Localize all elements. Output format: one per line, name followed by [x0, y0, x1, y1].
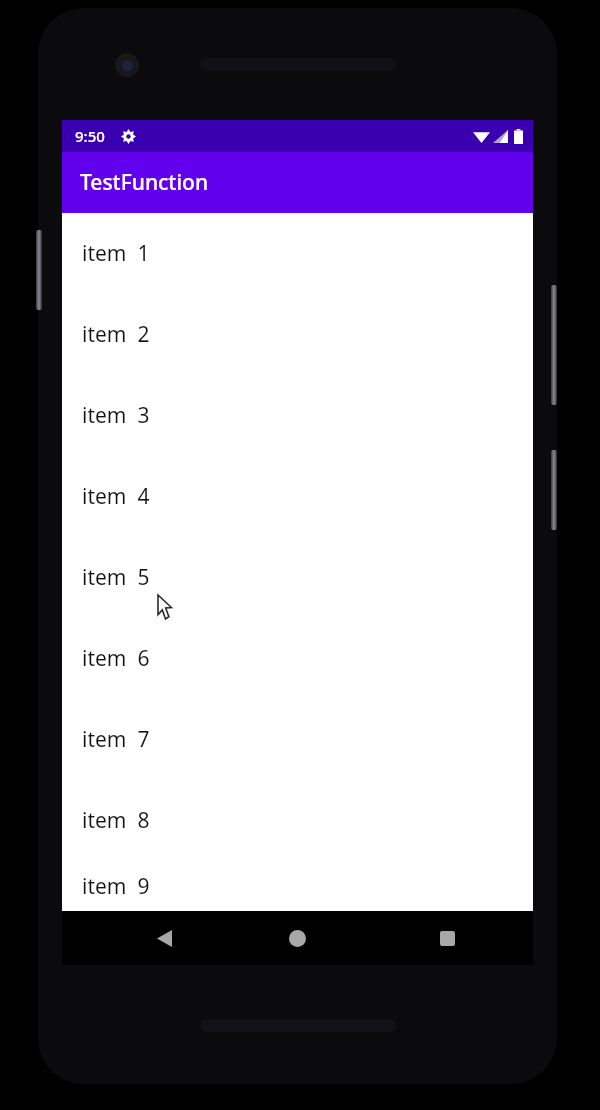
- staticText: item 2: [82, 320, 150, 349]
- staticText: item 5: [82, 563, 150, 592]
- staticText: TestFunction: [80, 168, 209, 197]
- button[interactable]: item 3: [62, 375, 533, 456]
- button[interactable]: Recent apps: [427, 918, 467, 958]
- button[interactable]: item 2: [62, 294, 533, 375]
- button[interactable]: item 4: [62, 456, 533, 537]
- button[interactable]: item 5: [62, 537, 533, 618]
- button[interactable]: item 8: [62, 780, 533, 861]
- button[interactable]: item 1: [62, 213, 533, 294]
- button[interactable]: Back: [144, 918, 184, 958]
- staticText: item 3: [82, 401, 150, 430]
- staticText: item 7: [82, 725, 150, 754]
- button[interactable]: item 7: [62, 699, 533, 780]
- button[interactable]: Home: [277, 918, 317, 958]
- button[interactable]: item 6: [62, 618, 533, 699]
- staticText: item 1: [82, 239, 150, 268]
- staticText: item 8: [82, 806, 150, 835]
- button[interactable]: item 9: [62, 861, 533, 911]
- staticText: item 4: [82, 482, 150, 511]
- staticText: item 9: [82, 872, 150, 901]
- staticText: item 6: [82, 644, 150, 673]
- staticText: 9:50: [75, 126, 105, 146]
